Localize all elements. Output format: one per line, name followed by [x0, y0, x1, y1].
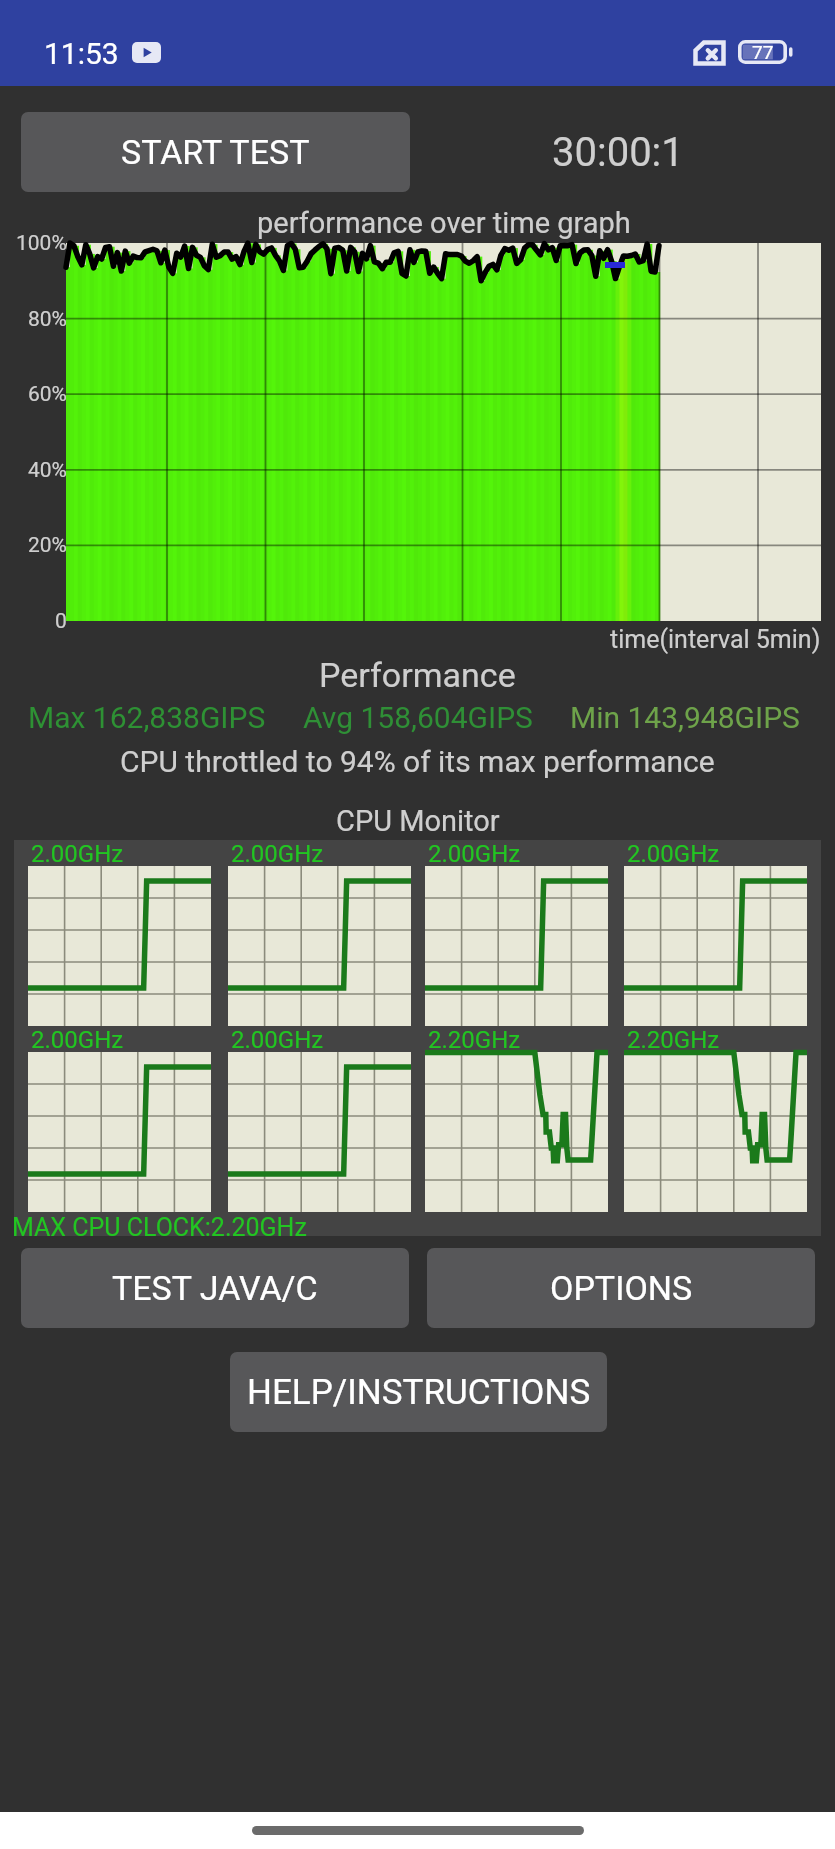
other: Home gesture bar	[252, 1826, 584, 1835]
staticText: 2.00GHz	[231, 840, 324, 868]
staticText: 2.00GHz	[231, 1026, 324, 1054]
staticText: 20%	[28, 533, 67, 558]
staticText: CPU throttled to 94% of its max performa…	[120, 744, 715, 779]
staticText: HELP/INSTRUCTIONS	[247, 1372, 591, 1413]
staticText: 2.00GHz	[627, 840, 720, 868]
staticText: 60%	[28, 382, 67, 407]
staticText: 2.20GHz	[428, 1026, 521, 1054]
staticText: OPTIONS	[550, 1268, 693, 1308]
staticText: 80%	[28, 307, 67, 332]
staticText: TEST JAVA/C	[112, 1268, 318, 1308]
staticText: 2.00GHz	[31, 840, 124, 868]
staticText: 11:53	[44, 36, 119, 71]
other: No SIM	[693, 40, 726, 66]
other: YouTube notification	[132, 42, 161, 63]
button[interactable]: TEST JAVA/C	[21, 1248, 409, 1328]
staticText: Performance	[319, 655, 516, 695]
staticText: 40%	[28, 458, 67, 483]
button[interactable]: OPTIONS	[427, 1248, 815, 1328]
staticText: 30:00:1	[552, 129, 684, 176]
staticText: Max 162,838GIPS	[28, 700, 266, 735]
staticText: 2.20GHz	[627, 1026, 720, 1054]
staticText: 77	[752, 41, 774, 63]
staticText: 100%	[16, 231, 67, 256]
staticText: CPU Monitor	[336, 804, 500, 838]
other: Battery 77 percent	[738, 40, 793, 64]
staticText: 2.00GHz	[428, 840, 521, 868]
staticText: Min 143,948GIPS	[570, 700, 800, 735]
button[interactable]: START TEST	[21, 112, 410, 192]
staticText: MAX CPU CLOCK:2.20GHz	[12, 1213, 307, 1242]
staticText: Avg 158,604GIPS	[303, 700, 533, 735]
staticText: 2.00GHz	[31, 1026, 124, 1054]
button[interactable]: HELP/INSTRUCTIONS	[230, 1352, 607, 1432]
staticText: START TEST	[121, 132, 310, 172]
staticText: 0	[55, 609, 67, 634]
staticText: performance over time graph	[257, 206, 631, 240]
staticText: time(interval 5min)	[610, 625, 821, 654]
